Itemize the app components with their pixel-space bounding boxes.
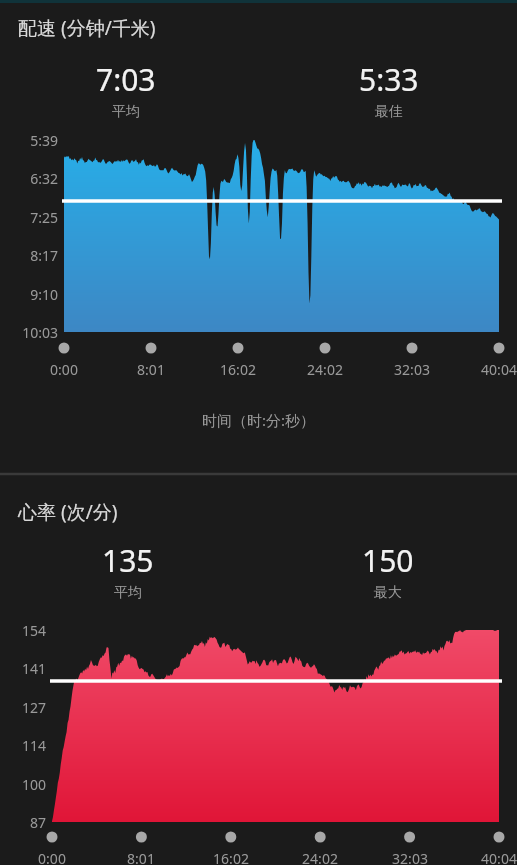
staticText: 配速 (分钟/千米) — [18, 15, 156, 41]
staticText: 8:01 — [119, 360, 183, 379]
staticText: 5:39 — [0, 131, 58, 150]
staticText: 最佳 — [375, 103, 403, 121]
staticText: 127 — [0, 698, 46, 717]
staticText: 40:04 — [467, 849, 517, 865]
staticText: 心率 (次/分) — [18, 499, 118, 525]
staticText: 平均 — [114, 584, 142, 602]
staticText: 7:03 — [96, 59, 156, 100]
staticText: 141 — [0, 659, 46, 678]
staticText: 40:04 — [467, 360, 517, 379]
staticText: 16:02 — [206, 360, 270, 379]
button[interactable]: 配速 (分钟/千米) — [16, 13, 158, 43]
staticText: 最大 — [374, 584, 402, 602]
staticText: 9:10 — [0, 285, 58, 304]
staticText: 时间（时:分:秒） — [0, 410, 517, 430]
staticText: 8:01 — [109, 849, 173, 865]
button[interactable]: 135 — [100, 538, 156, 604]
button[interactable]: 7:03 — [94, 57, 158, 123]
staticText: 16:02 — [199, 849, 263, 865]
staticText: 154 — [0, 621, 46, 640]
staticText: 87 — [0, 813, 46, 832]
staticText: 135 — [102, 540, 154, 581]
staticText: 24:02 — [293, 360, 357, 379]
staticText: 7:25 — [0, 208, 58, 227]
staticText: 150 — [362, 540, 414, 581]
staticText: 8:17 — [0, 246, 58, 265]
staticText: 32:03 — [378, 849, 442, 865]
button[interactable]: 150 — [360, 538, 416, 604]
staticText: 10:03 — [0, 323, 58, 342]
staticText: 0:00 — [32, 360, 96, 379]
staticText: 32:03 — [380, 360, 444, 379]
staticText: 6:32 — [0, 169, 58, 188]
staticText: 24:02 — [288, 849, 352, 865]
staticText: 平均 — [112, 103, 140, 121]
button[interactable]: 心率 (次/分) — [16, 497, 120, 527]
staticText: 114 — [0, 736, 46, 755]
staticText: 0:00 — [20, 849, 84, 865]
button[interactable]: 5:33 — [357, 57, 421, 123]
staticText: 100 — [0, 775, 46, 794]
staticText: 5:33 — [359, 59, 419, 100]
